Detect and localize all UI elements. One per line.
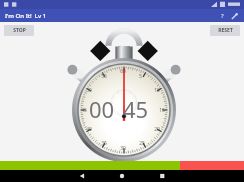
staticText: 25	[139, 140, 145, 147]
staticText: STOP	[13, 27, 26, 34]
staticText: 20	[154, 126, 160, 133]
staticText: I'm On It! Lv 1	[5, 12, 47, 20]
staticText: 00	[89, 94, 115, 124]
staticText: 10	[154, 87, 160, 94]
staticText: 15	[159, 107, 165, 114]
button[interactable]: RESET	[210, 25, 240, 36]
staticText: 45	[81, 107, 87, 114]
staticText: 45	[123, 94, 149, 124]
staticText: 40	[86, 126, 92, 133]
button[interactable]: Settings	[228, 10, 240, 22]
button[interactable]: Help	[216, 10, 228, 22]
button[interactable]: Stopwatch dial	[0, 22, 244, 161]
staticText: 35	[101, 140, 107, 147]
staticText: 60	[120, 68, 126, 75]
staticText: 55	[101, 73, 107, 80]
button[interactable]: STOP	[4, 25, 34, 36]
staticText: ?	[221, 12, 224, 20]
staticText: RESET	[218, 27, 233, 34]
staticText: 5	[139, 73, 142, 80]
staticText: 50	[86, 87, 92, 94]
staticText: 30	[120, 145, 126, 152]
